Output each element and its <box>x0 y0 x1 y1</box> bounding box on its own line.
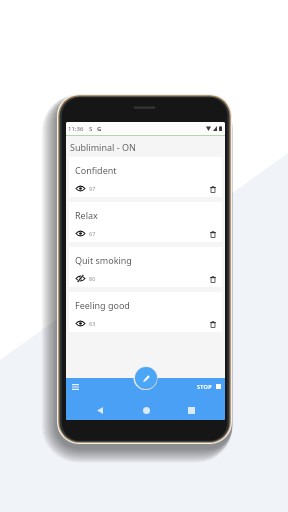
button[interactable]: Subliminal - ON <box>66 136 225 157</box>
button[interactable]: Home <box>139 403 153 417</box>
button[interactable]: Edit <box>135 367 157 389</box>
button[interactable]: STOP <box>197 383 221 390</box>
button[interactable]: Back <box>93 403 107 417</box>
staticText: Relax <box>75 209 98 221</box>
button[interactable]: Confident <box>69 157 222 197</box>
staticText: G <box>97 125 102 133</box>
staticText: 63 <box>89 320 96 327</box>
staticText: 67 <box>89 230 96 237</box>
staticText: Confident <box>75 164 117 176</box>
button[interactable]: Quit smoking <box>69 247 222 287</box>
button[interactable]: Relax <box>69 202 222 242</box>
button[interactable]: Delete <box>207 183 219 195</box>
button[interactable]: Delete <box>207 228 219 240</box>
staticText: STOP <box>197 383 212 390</box>
staticText: Subliminal - ON <box>70 141 136 153</box>
button[interactable]: Menu <box>68 380 82 394</box>
button[interactable]: Delete <box>207 273 219 285</box>
button[interactable]: Recents <box>184 403 198 417</box>
staticText: 11:36 <box>68 125 84 133</box>
staticText: S <box>89 125 93 133</box>
staticText: 97 <box>89 185 96 192</box>
staticText: Quit smoking <box>75 254 132 266</box>
button[interactable]: Feeling good <box>69 292 222 332</box>
button[interactable]: Delete <box>207 318 219 330</box>
staticText: 80 <box>89 275 96 282</box>
staticText: Feeling good <box>75 299 130 311</box>
